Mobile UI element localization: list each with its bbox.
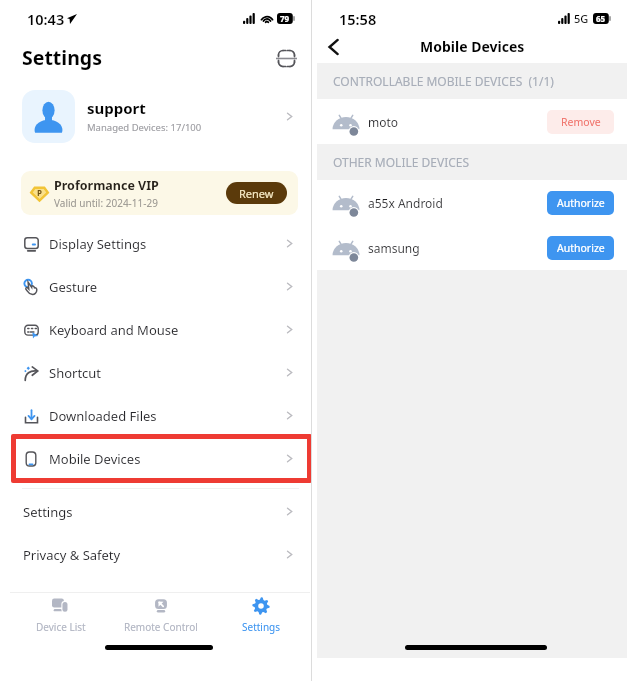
button[interactable]: Back (318, 32, 348, 62)
staticText: Authorize (557, 241, 605, 255)
staticText: Remote Control (124, 620, 198, 634)
staticText: Privacy & Safety (23, 546, 121, 564)
staticText: 10:43 (27, 9, 65, 29)
staticText: 5G (574, 11, 589, 26)
staticText: Keyboard and Mouse (49, 321, 179, 339)
staticText: Proformance VIP (54, 177, 159, 194)
button[interactable]: Renew (226, 182, 287, 204)
staticText: moto (368, 114, 399, 130)
staticText: Settings (242, 620, 281, 634)
staticText: Managed Devices: 17/100 (87, 121, 202, 134)
button[interactable]: Downloaded Files (0, 394, 311, 437)
staticText: Display Settings (49, 235, 147, 253)
button[interactable]: Settings (0, 490, 311, 533)
button[interactable]: support (0, 88, 311, 144)
button[interactable]: Settings (211, 593, 311, 637)
button[interactable]: P (21, 171, 298, 215)
button[interactable]: Device List (11, 593, 111, 637)
staticText: Authorize (557, 196, 605, 210)
staticText: Remove (561, 115, 601, 129)
staticText: Downloaded Files (49, 407, 157, 425)
staticText: Settings (23, 503, 73, 521)
staticText: 15:58 (339, 9, 377, 29)
staticText: Settings (22, 44, 102, 71)
button[interactable]: Authorize (547, 236, 614, 260)
button[interactable]: Shortcut (0, 351, 311, 394)
staticText: Valid until: 2024-11-29 (54, 196, 158, 210)
staticText: Shortcut (49, 364, 102, 382)
button[interactable]: Privacy & Safety (0, 533, 311, 576)
button[interactable]: moto (317, 99, 627, 144)
staticText: samsung (368, 240, 420, 256)
staticText: support (87, 98, 146, 118)
staticText: Renew (239, 186, 274, 201)
staticText: 79 (280, 13, 290, 24)
button[interactable]: Remove (547, 110, 614, 134)
button[interactable]: Scan QR code (273, 45, 299, 71)
button[interactable]: Keyboard and Mouse (0, 308, 311, 351)
staticText: OTHER MOLILE DEVICES (333, 154, 470, 170)
staticText: 65 (596, 13, 606, 24)
staticText: a55x Android (368, 195, 443, 211)
staticText: CONTROLLABLE MOBILE DEVICES (1/1) (333, 73, 554, 89)
staticText: P (37, 187, 42, 198)
staticText: Mobile Devices (420, 37, 525, 56)
button[interactable]: samsung (317, 225, 627, 270)
button[interactable]: Mobile Devices (0, 437, 311, 480)
button[interactable]: Display Settings (0, 222, 311, 265)
button[interactable]: Authorize (547, 191, 614, 215)
staticText: Gesture (49, 278, 98, 296)
button[interactable]: Remote Control (111, 593, 211, 637)
button[interactable]: Gesture (0, 265, 311, 308)
staticText: Device List (36, 620, 86, 634)
button[interactable]: a55x Android (317, 180, 627, 225)
staticText: Mobile Devices (49, 450, 141, 468)
